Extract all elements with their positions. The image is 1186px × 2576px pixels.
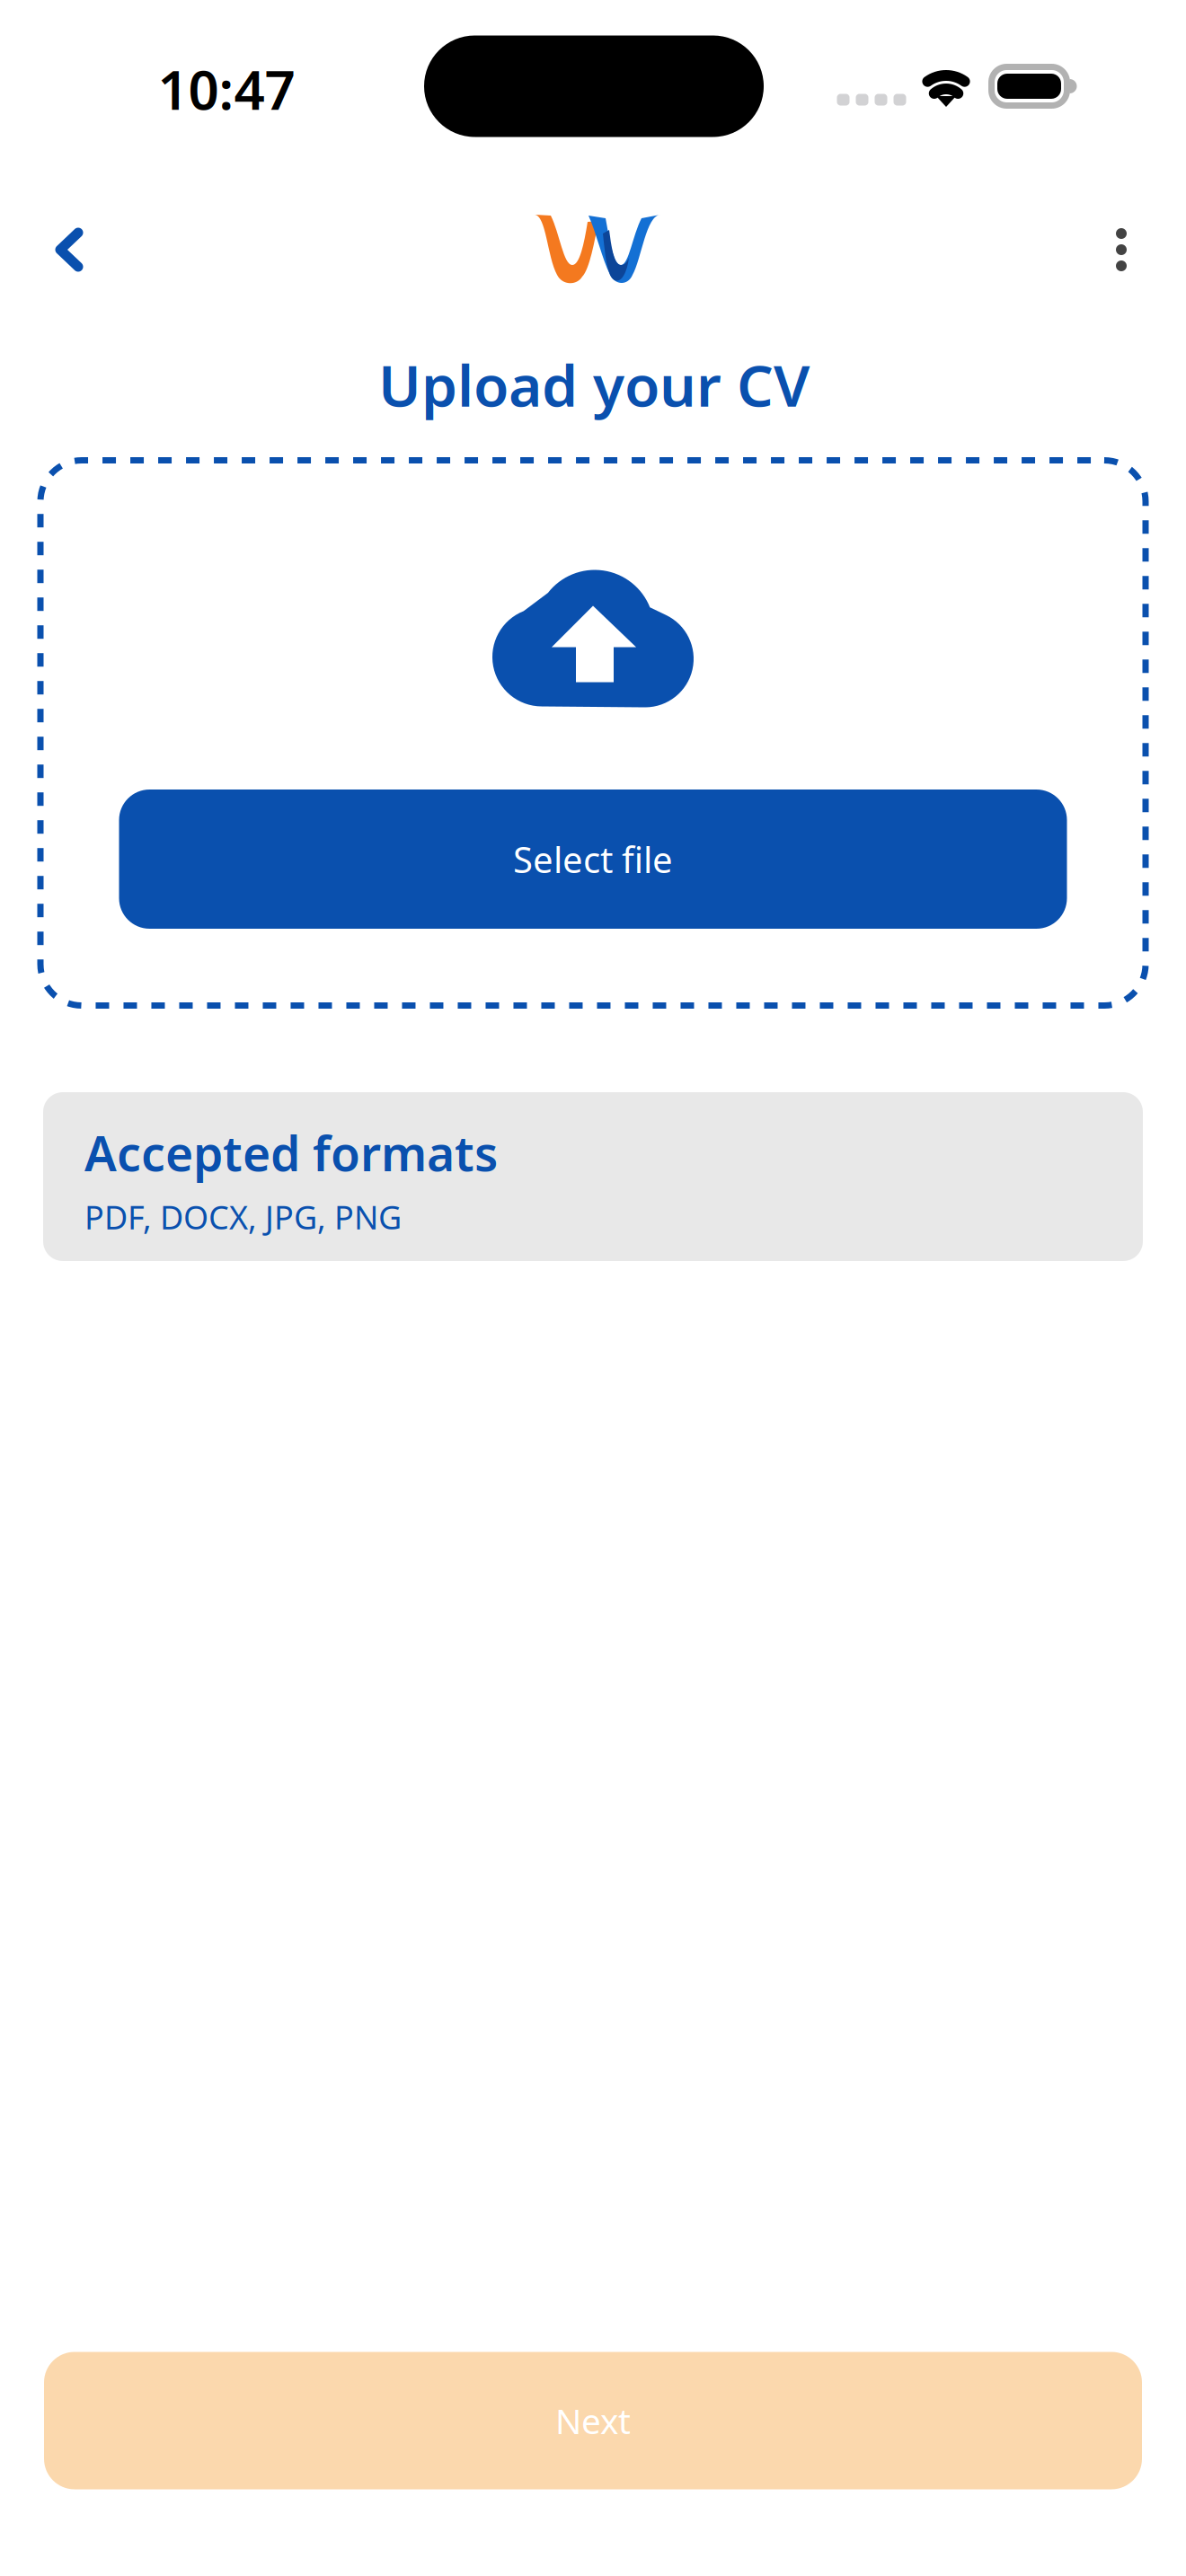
staticText: 10:47 xyxy=(158,53,295,125)
staticText: PDF, DOCX, JPG, PNG xyxy=(84,1195,402,1238)
button[interactable]: Next xyxy=(44,2352,1142,2489)
button[interactable]: Select file xyxy=(119,790,1067,929)
staticText: Accepted formats xyxy=(84,1121,498,1185)
button[interactable]: More options xyxy=(1076,205,1166,295)
button[interactable]: Back xyxy=(24,205,114,295)
staticText: Next xyxy=(555,2398,631,2444)
staticText: Select file xyxy=(513,835,673,883)
staticText: Upload your CV xyxy=(378,346,810,423)
